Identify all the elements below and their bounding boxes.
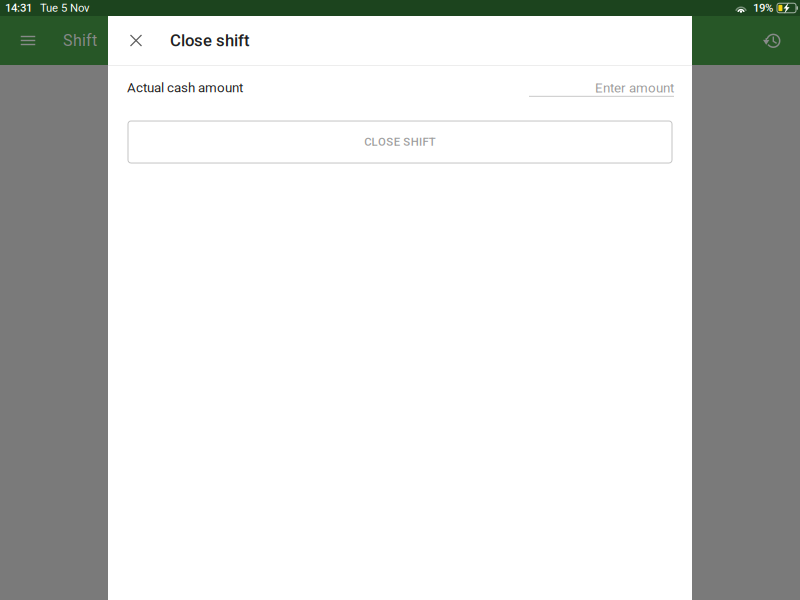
staticText: CLOSE SHIFT bbox=[364, 135, 436, 149]
button[interactable]: Menu bbox=[0, 16, 56, 65]
staticText: Enter amount bbox=[595, 80, 674, 96]
button[interactable]: Shift history bbox=[744, 16, 800, 65]
staticText: Shift bbox=[63, 31, 97, 50]
button[interactable]: CLOSE SHIFT bbox=[128, 121, 672, 163]
button[interactable]: Close bbox=[108, 16, 164, 65]
staticText: Actual cash amount bbox=[127, 80, 243, 96]
staticText: 14:31 bbox=[5, 1, 32, 15]
staticText: 19% bbox=[753, 1, 773, 15]
staticText: Close shift bbox=[170, 31, 250, 50]
staticText: Tue 5 Nov bbox=[40, 1, 89, 15]
